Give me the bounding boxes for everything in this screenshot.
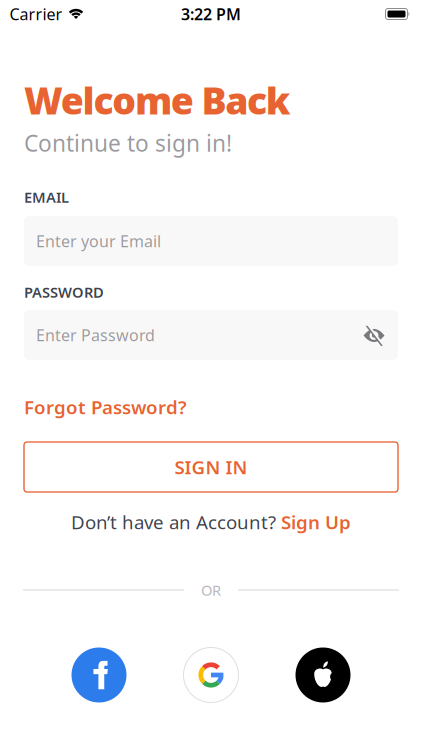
staticText: OR [201,580,221,600]
staticText: SIGN IN [174,455,247,479]
button[interactable]: Forgot Password? [24,395,187,419]
button[interactable]: Enter Password [24,310,398,360]
button[interactable]: Sign Up [281,510,351,534]
staticText: Carrier [9,3,62,25]
staticText: 3:22 PM [181,3,241,25]
staticText: Welcome Back [24,75,291,125]
button[interactable]: Sign in with Facebook [71,647,126,702]
staticText: Forgot Password? [24,395,187,419]
button[interactable]: Enter your Email [24,216,398,266]
staticText: PASSWORD [24,282,104,302]
staticText: EMAIL [24,187,69,207]
button[interactable]: Sign in with Google [183,647,238,702]
staticText: Don’t have an Account? [71,510,276,534]
button[interactable]: Show password [363,325,385,345]
staticText: Enter your Email [36,230,161,252]
staticText: Continue to sign in! [24,128,232,158]
button[interactable]: Sign in with Apple [295,647,350,702]
staticText: Enter Password [36,324,155,346]
button[interactable]: SIGN IN [24,442,398,492]
staticText: Sign Up [281,510,351,534]
